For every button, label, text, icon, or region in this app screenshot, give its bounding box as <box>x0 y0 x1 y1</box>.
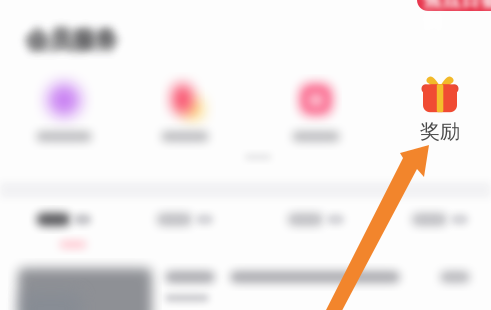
button[interactable] <box>145 209 225 253</box>
button[interactable] <box>20 70 108 150</box>
button[interactable] <box>24 209 104 253</box>
button[interactable]: 焦点日签到 <box>417 0 491 11</box>
button[interactable] <box>276 209 356 253</box>
button[interactable] <box>18 264 488 310</box>
button[interactable] <box>400 209 480 253</box>
button[interactable]: 奖励 <box>396 67 484 147</box>
button[interactable] <box>141 70 229 150</box>
staticText: 奖励 <box>420 119 460 144</box>
button[interactable] <box>272 70 360 150</box>
